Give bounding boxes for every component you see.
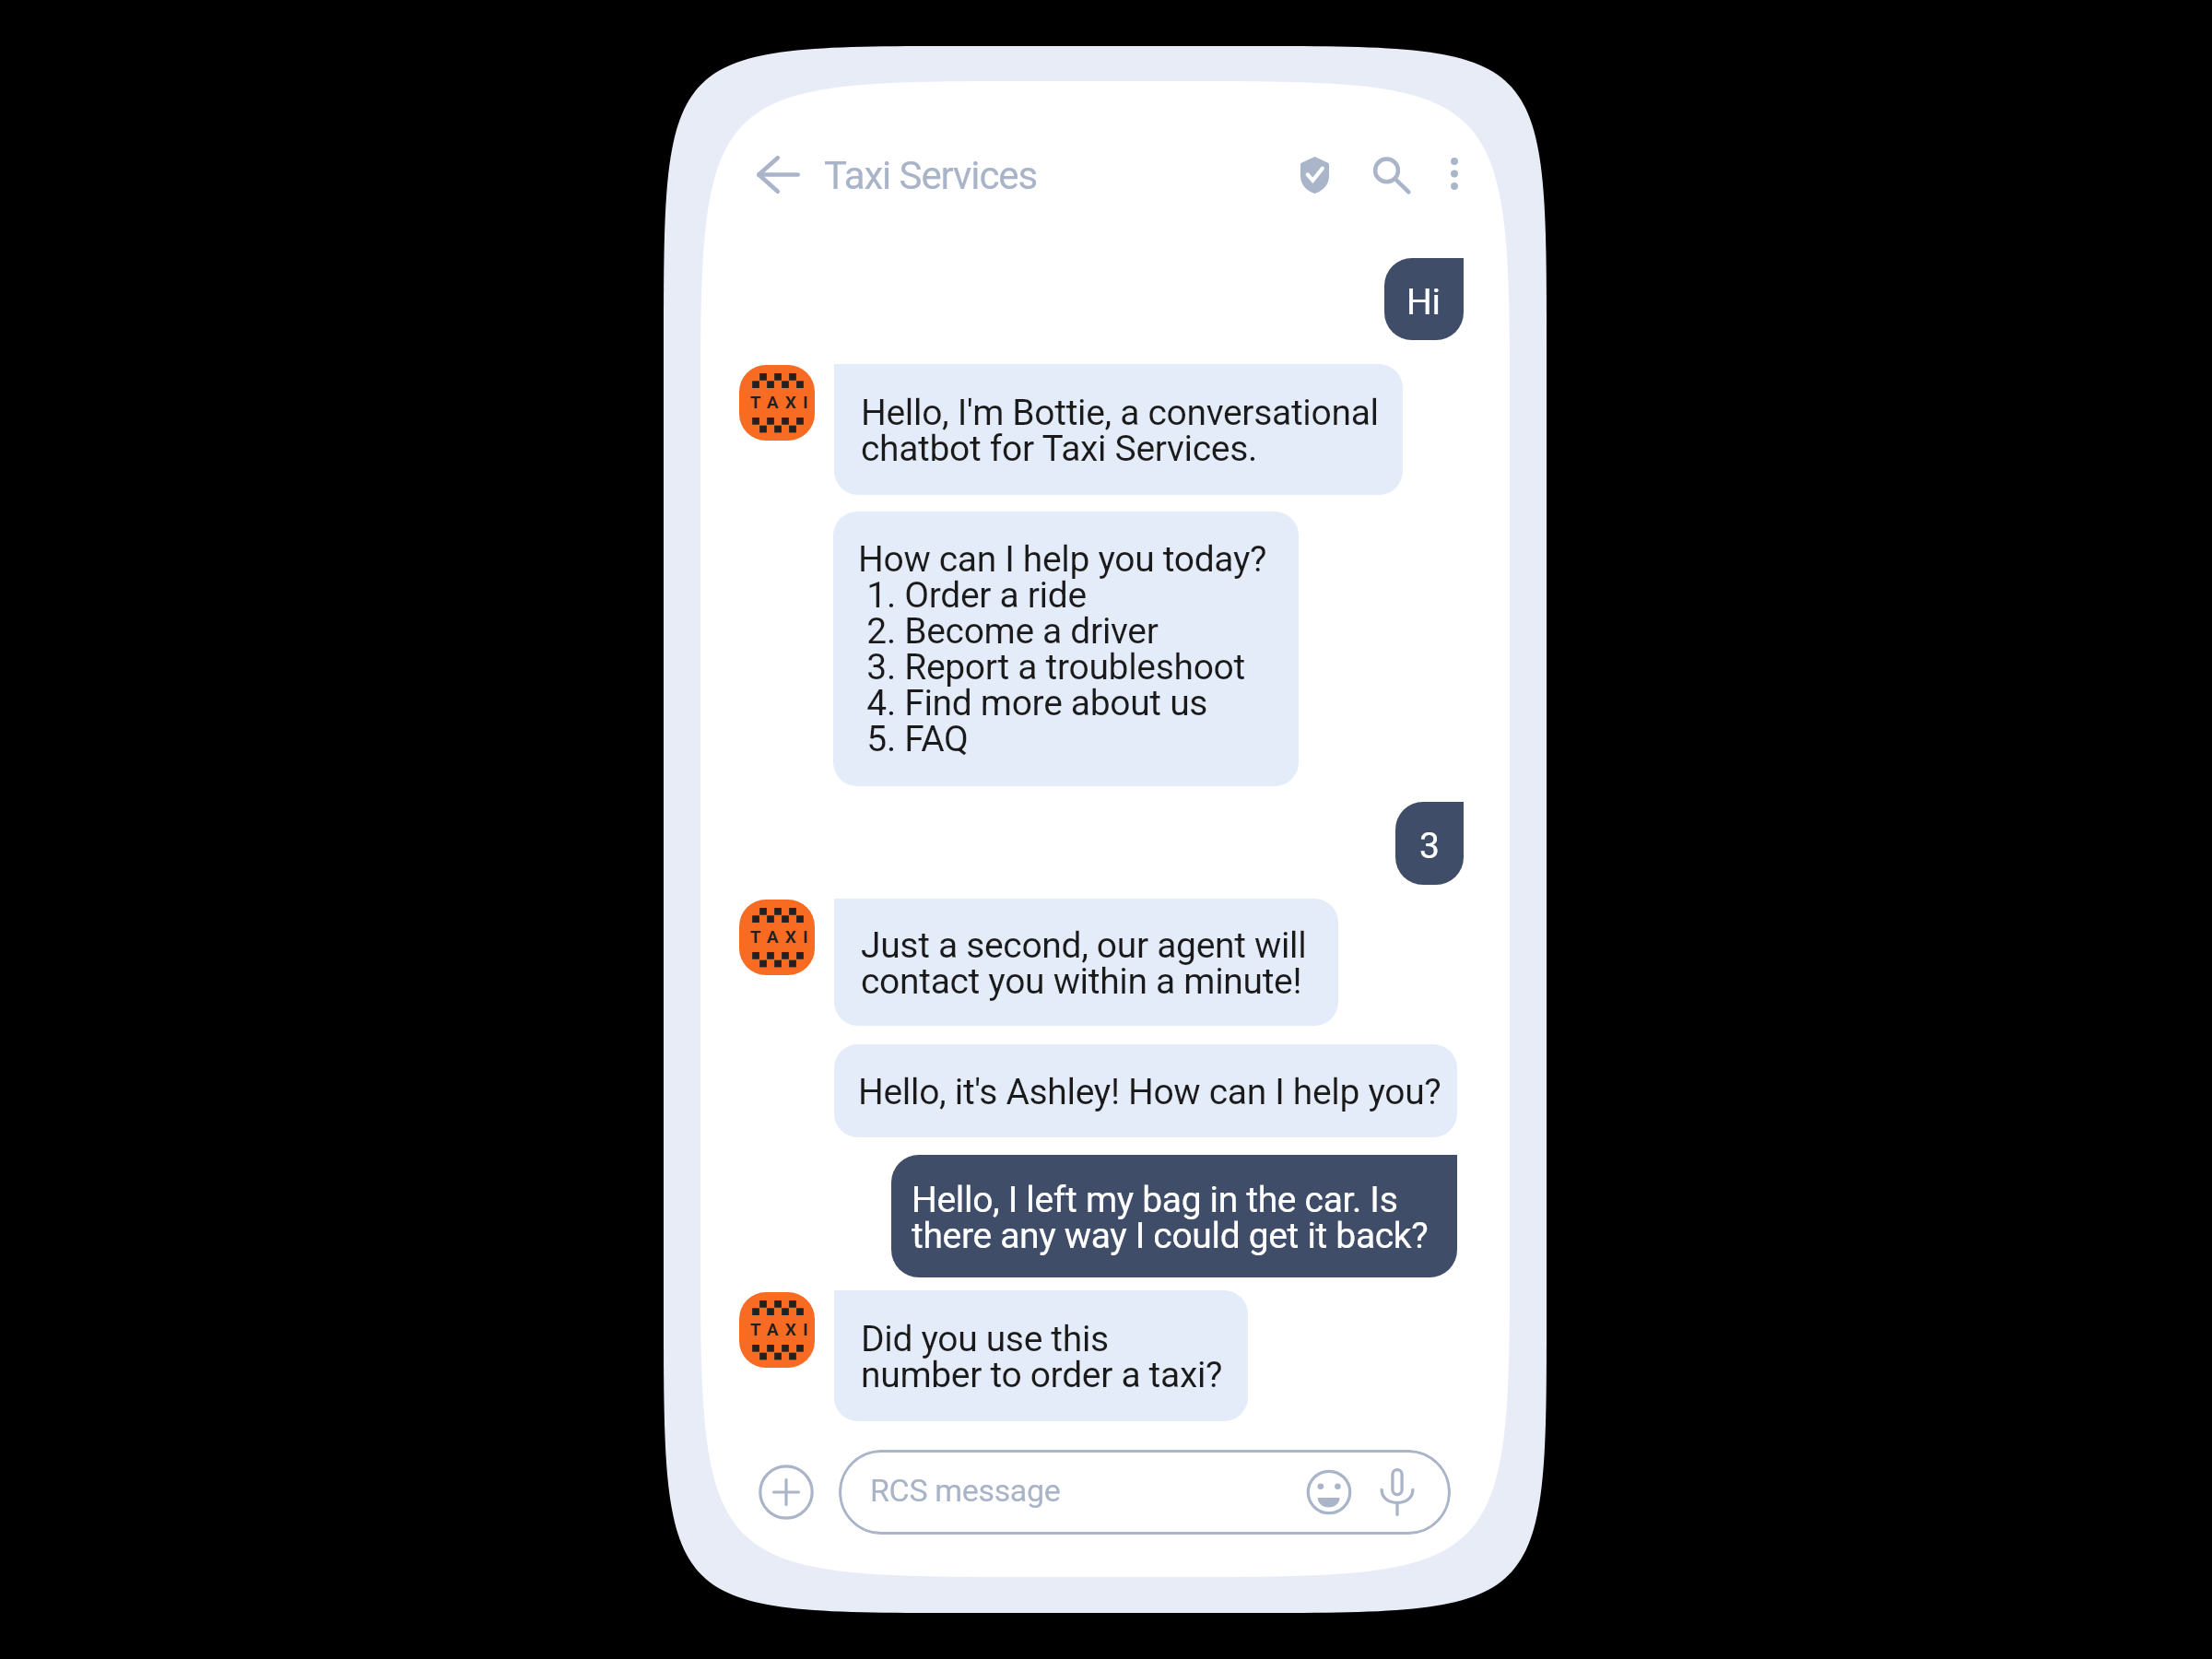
button[interactable]: More options [1419,138,1489,208]
button[interactable]: Search [1356,139,1426,209]
staticText: TAXI [750,926,815,947]
staticText: RCS message [870,1472,1061,1509]
button[interactable]: Hello, it's Ashley! How can I help you? [834,1044,1457,1137]
button[interactable]: Hello, I'm Bottie, a conversational chat… [834,364,1403,495]
staticText: Did you use this number to order a taxi? [861,1318,1223,1396]
button[interactable]: RCS message [839,1450,1451,1535]
staticText: TAXI [750,1319,815,1339]
staticText: Just a second, our agent will contact yo… [861,924,1307,1003]
staticText: Hello, I left my bag in the car. Is ther… [912,1179,1429,1257]
staticText: Hi [1406,281,1441,324]
staticText: Taxi Services [824,153,1038,198]
button[interactable]: Add attachment [747,1453,825,1531]
button[interactable]: Verified business [1279,140,1349,210]
staticText: Hello, it's Ashley! How can I help you? [858,1071,1441,1113]
staticText: How can I help you today? 1. Order a rid… [858,538,1267,760]
button[interactable]: Did you use this number to order a taxi? [834,1290,1248,1421]
staticText: Hello, I'm Bottie, a conversational chat… [861,392,1379,470]
button[interactable]: Emoji [1297,1460,1361,1524]
button[interactable]: 3 [1395,802,1464,885]
staticText: TAXI [750,392,815,412]
button[interactable]: Hello, I left my bag in the car. Is ther… [891,1155,1457,1277]
button[interactable]: How can I help you today? 1. Order a rid… [833,512,1299,786]
button[interactable]: Voice message [1365,1460,1430,1524]
button[interactable]: Just a second, our agent will contact yo… [834,899,1338,1026]
button[interactable]: Taxi Services [811,138,1060,212]
button[interactable]: Hi [1384,258,1464,340]
staticText: 3 [1419,825,1440,867]
button[interactable]: Back [738,135,818,214]
